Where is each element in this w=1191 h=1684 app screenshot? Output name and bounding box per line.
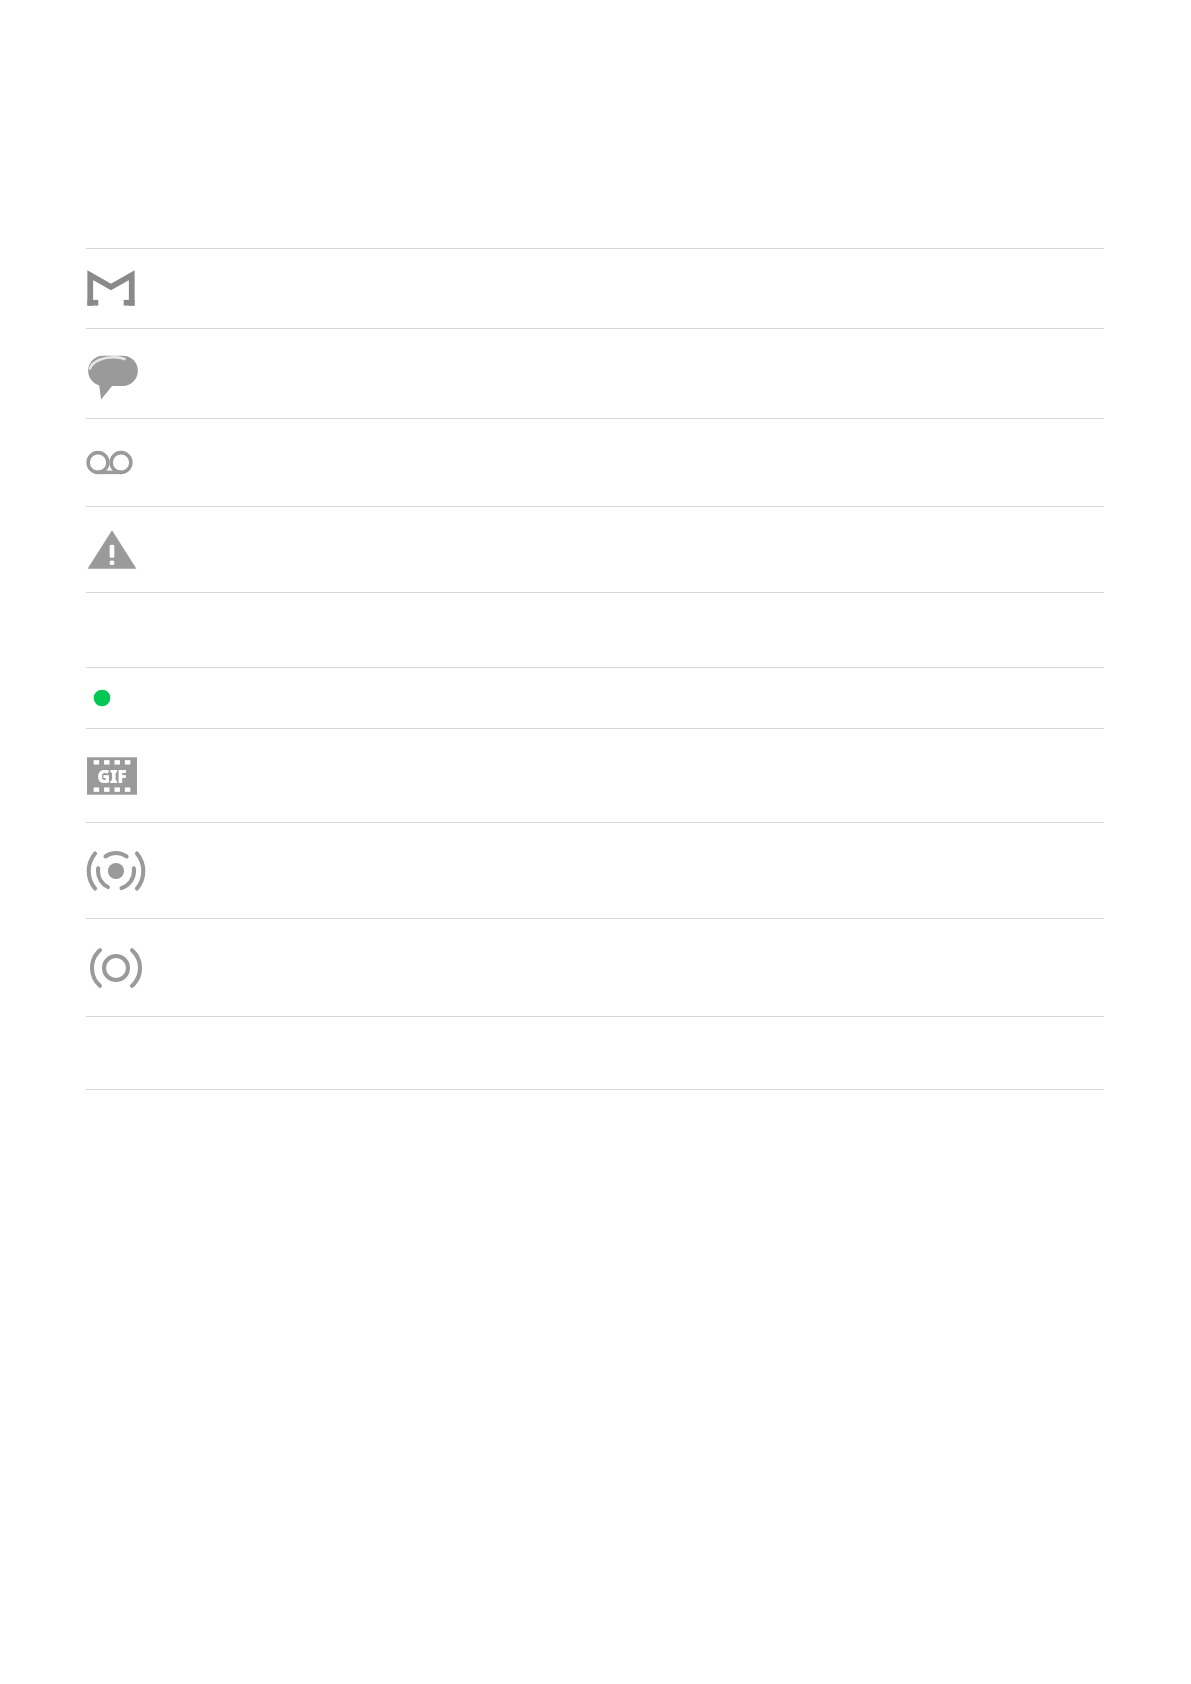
button[interactable]: Warning (0, 507, 1191, 592)
other: Location (86, 938, 146, 998)
button[interactable]: Location active (0, 823, 1191, 918)
button[interactable]: Gmail (0, 249, 1191, 328)
other: Warning (86, 524, 138, 576)
button[interactable]: Messages (0, 329, 1191, 418)
button[interactable]: Voicemail (0, 419, 1191, 506)
other: GIF (86, 750, 138, 802)
other: Location active (86, 841, 146, 901)
button[interactable]: Active indicator (0, 668, 1191, 728)
button[interactable]: Location (0, 919, 1191, 1016)
other: Gmail (86, 264, 136, 314)
other: Messages (86, 347, 140, 401)
staticText: GIF (97, 765, 127, 788)
other: Active indicator (86, 682, 118, 714)
button[interactable]: GIF (0, 729, 1191, 822)
other: Voicemail (86, 439, 133, 486)
